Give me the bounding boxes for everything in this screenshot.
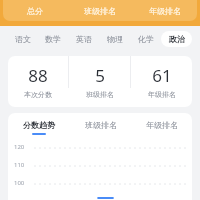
staticText: 110	[14, 161, 25, 169]
staticText: 120	[14, 143, 25, 151]
staticText: 年级排名	[146, 120, 178, 130]
button[interactable]: 物理	[99, 26, 130, 52]
staticText: 物理	[107, 34, 123, 44]
button[interactable]: 政治	[161, 31, 192, 47]
staticText: 总分	[27, 6, 43, 16]
staticText: 语文	[15, 34, 31, 44]
staticText: 61	[152, 64, 172, 87]
button[interactable]: 分数趋势	[8, 113, 70, 141]
button[interactable]: 数学	[38, 26, 68, 52]
button[interactable]: 年级排名	[132, 0, 197, 21]
staticText: 政治	[169, 34, 185, 44]
button[interactable]: 总分	[3, 0, 67, 21]
staticText: 英语	[76, 34, 92, 44]
button[interactable]: 班级排名	[67, 0, 132, 21]
staticText: 分数趋势	[23, 120, 55, 130]
button[interactable]: 班级排名	[70, 113, 131, 141]
button[interactable]: 88	[8, 56, 68, 107]
button[interactable]: 化学	[130, 26, 161, 52]
staticText: 100	[14, 179, 25, 187]
staticText: 88	[28, 64, 48, 87]
button[interactable]: 5	[69, 56, 130, 107]
staticText: 年级排名	[148, 90, 176, 99]
button[interactable]: 年级排名	[131, 113, 192, 141]
staticText: 数学	[45, 34, 61, 44]
staticText: 化学	[138, 34, 154, 44]
button[interactable]: 61	[131, 56, 192, 107]
staticText: 年级排名	[149, 6, 181, 16]
button[interactable]: 语文	[8, 26, 38, 52]
staticText: 本次分数	[24, 90, 52, 99]
staticText: 班级排名	[84, 6, 116, 16]
staticText: 5	[95, 64, 105, 87]
button[interactable]: 英语	[68, 26, 99, 52]
staticText: 班级排名	[86, 90, 114, 99]
staticText: 班级排名	[85, 120, 117, 130]
